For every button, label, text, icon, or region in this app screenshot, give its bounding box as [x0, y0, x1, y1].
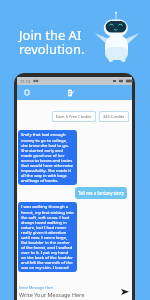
button[interactable]: Emily that had enough money to go to col… [18, 130, 77, 185]
staticText: Write Your Message Here [19, 291, 85, 298]
staticText: Join the AI [19, 26, 82, 44]
button[interactable]: Earn 5 Free Credits [53, 112, 95, 121]
button[interactable]: Send [119, 286, 130, 297]
button[interactable]: Menu [22, 88, 31, 97]
button[interactable]: Tell me a fantasy story [75, 187, 127, 199]
button[interactable]: New chat [66, 88, 76, 98]
staticText: I was walking through a forest, my feet … [21, 204, 74, 270]
button[interactable]: 343 Credits [100, 112, 128, 121]
staticText: Earn 5 Free Credits [56, 114, 92, 119]
staticText: 343 Credits [103, 114, 125, 119]
staticText: 11:12 [20, 79, 31, 84]
button[interactable]: I was walking through a forest, my feet … [18, 202, 77, 272]
staticText: Tell me a fantasy story [78, 190, 124, 196]
staticText: Emily that had enough money to go to col… [21, 132, 74, 183]
staticText: Enter Message Here [19, 285, 54, 290]
staticText: revolution. [19, 40, 85, 58]
